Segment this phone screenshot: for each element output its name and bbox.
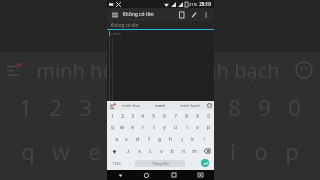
staticText: w — [52, 136, 70, 166]
button[interactable]: Tiếng Việt — [135, 160, 185, 167]
button[interactable]: k — [187, 133, 198, 145]
staticText: 0 — [207, 113, 210, 119]
staticText: r — [118, 136, 128, 166]
staticText: c — [149, 148, 152, 155]
button[interactable]: Shift — [107, 145, 122, 157]
button[interactable]: Home — [133, 170, 160, 180]
button[interactable]: b — [167, 145, 178, 157]
button[interactable]: 4 — [137, 110, 148, 121]
staticText: 9 — [196, 113, 199, 119]
staticText: 9 — [258, 92, 271, 120]
button[interactable]: Menu — [110, 10, 119, 19]
staticText: e — [88, 136, 101, 166]
button[interactable]: Export — [177, 10, 186, 19]
button[interactable]: g — [154, 133, 165, 145]
staticText: o — [196, 124, 199, 131]
staticText: h — [169, 136, 172, 143]
button[interactable]: h — [165, 133, 176, 145]
button[interactable]: d — [132, 133, 143, 145]
button[interactable]: 0 — [203, 110, 214, 121]
button[interactable]: 7 — [170, 110, 181, 121]
button[interactable]: e — [127, 121, 137, 133]
staticText: Tiếng Việt — [152, 161, 169, 166]
button[interactable]: Recent apps — [160, 170, 187, 180]
staticText: z — [127, 148, 130, 155]
staticText: g — [158, 136, 161, 143]
button[interactable]: m — [189, 145, 200, 157]
staticText: 21% — [189, 2, 197, 7]
staticText: k — [191, 136, 194, 143]
staticText: p — [285, 136, 299, 166]
button[interactable]: ?123 — [107, 157, 125, 169]
staticText: 6 — [163, 113, 166, 119]
staticText: q — [21, 136, 35, 166]
staticText: d — [136, 136, 139, 143]
button[interactable]: u — [170, 121, 181, 133]
button[interactable]: z — [122, 145, 134, 157]
staticText: i — [186, 124, 188, 131]
staticText: 5 — [139, 92, 152, 120]
button[interactable]: o — [192, 121, 203, 133]
staticText: n — [182, 148, 185, 155]
button[interactable]: c — [145, 145, 156, 157]
staticText: e — [131, 124, 134, 131]
button[interactable]: Switch keyboard — [187, 170, 214, 180]
button[interactable]: minh bạch — [173, 101, 206, 110]
button[interactable]: n — [178, 145, 189, 157]
button[interactable]: l — [198, 133, 209, 145]
button[interactable]: r — [137, 121, 148, 133]
button[interactable]: s — [121, 133, 132, 145]
button[interactable]: 1 — [107, 110, 117, 121]
button[interactable]: v — [156, 145, 167, 157]
staticText: 3 — [131, 113, 134, 119]
button[interactable]: 9 — [192, 110, 203, 121]
button[interactable]: q — [107, 121, 117, 133]
button[interactable]: Hide keyboard — [107, 170, 133, 180]
button[interactable]: w — [117, 121, 127, 133]
button[interactable]: More options — [201, 10, 210, 19]
button[interactable]: j — [176, 133, 187, 145]
button[interactable]: Emoji — [206, 102, 213, 109]
staticText: 4 — [109, 92, 122, 120]
staticText: 7 — [174, 113, 177, 119]
staticText: minh bạch — [180, 103, 200, 108]
staticText: m — [192, 148, 197, 155]
staticText: , — [129, 160, 131, 166]
staticText: minh — [155, 103, 165, 108]
button[interactable]: x — [134, 145, 145, 157]
button[interactable]: minh họa — [115, 101, 147, 110]
staticText: t — [145, 136, 153, 166]
button[interactable]: t — [148, 121, 159, 133]
staticText: 20:19 — [199, 1, 211, 7]
staticText: 2 — [49, 92, 62, 120]
button[interactable]: i — [181, 121, 192, 133]
button[interactable]: 6 — [159, 110, 170, 121]
button[interactable]: Không có tên — [107, 21, 214, 30]
button[interactable]: Period — [186, 157, 195, 169]
staticText: . — [190, 160, 192, 166]
staticText: 3 — [79, 92, 92, 120]
staticText: w — [120, 124, 124, 131]
button[interactable]: f — [143, 133, 154, 145]
staticText: Không có tên — [122, 11, 154, 18]
staticText: i — [230, 136, 236, 166]
button[interactable]: Enter — [195, 157, 214, 169]
button[interactable]: Clipboard — [109, 103, 115, 109]
button[interactable]: p — [203, 121, 214, 133]
button[interactable]: 2 — [117, 110, 127, 121]
button[interactable]: 8 — [181, 110, 192, 121]
staticText: Không có tên — [110, 22, 139, 28]
button[interactable]: y — [159, 121, 170, 133]
button[interactable]: 3 — [127, 110, 137, 121]
staticText: minh họa — [122, 103, 140, 108]
staticText: b — [171, 148, 174, 155]
button[interactable]: 5 — [148, 110, 159, 121]
button[interactable]: minh — [147, 101, 173, 110]
staticText: 8 — [228, 92, 241, 120]
button[interactable]: Backspace — [200, 145, 214, 157]
staticText: u — [174, 124, 177, 131]
button[interactable]: Comma — [125, 157, 134, 169]
button[interactable]: a — [111, 133, 121, 145]
staticText: o — [254, 136, 268, 166]
button[interactable]: Edit — [189, 10, 198, 19]
